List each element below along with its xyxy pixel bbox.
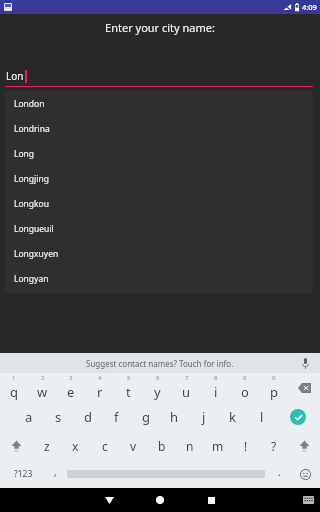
button[interactable]: Longjing [5, 166, 313, 191]
button[interactable]: Voice input [298, 356, 312, 370]
button[interactable]: Enter [276, 402, 320, 431]
button[interactable]: Suggest contact names? Touch for info. [0, 353, 320, 373]
staticText: ! [244, 438, 248, 454]
staticText: s [55, 408, 62, 426]
button[interactable]: g [131, 402, 160, 431]
button[interactable]: , [46, 460, 64, 488]
button[interactable]: z [32, 431, 61, 460]
staticText: v [130, 438, 137, 454]
button[interactable]: Longyan [5, 266, 313, 291]
staticText: d [84, 408, 92, 426]
button[interactable]: London [5, 91, 313, 116]
staticText: Londrina [14, 123, 50, 135]
button[interactable]: Recents [202, 488, 220, 512]
staticText: ?123 [14, 468, 33, 480]
staticText: Suggest contact names? Touch for info. [86, 358, 234, 369]
staticText: Long [14, 148, 35, 160]
staticText: h [170, 408, 179, 426]
staticText: t [126, 383, 131, 401]
button[interactable]: h [160, 402, 189, 431]
staticText: u [182, 383, 191, 401]
staticText: j [202, 408, 206, 426]
staticText: 4:09 [302, 2, 317, 12]
staticText: f [114, 408, 119, 426]
button[interactable]: l [247, 402, 276, 431]
staticText: Longxuyen [14, 248, 59, 260]
staticText: c [102, 438, 108, 454]
staticText: w [37, 383, 48, 401]
button[interactable]: a [14, 402, 44, 431]
button[interactable]: Home [151, 488, 169, 512]
staticText: Longueuil [14, 223, 54, 235]
button[interactable]: c [90, 431, 119, 460]
staticText: i [214, 383, 218, 401]
button[interactable]: b [148, 431, 176, 460]
button[interactable]: s [44, 402, 73, 431]
button[interactable]: Shift [0, 431, 32, 460]
staticText: e [67, 383, 75, 401]
button[interactable]: Londrina [5, 116, 313, 141]
button[interactable]: Shift [288, 431, 320, 460]
staticText: l [260, 408, 264, 426]
staticText: 2 [41, 374, 45, 382]
button[interactable]: Longxuyen [5, 241, 313, 266]
button[interactable]: 2 [28, 373, 56, 402]
staticText: g [142, 408, 150, 426]
button[interactable]: ?123 [0, 460, 46, 488]
staticText: 6 [156, 374, 160, 382]
button[interactable]: 7 [172, 373, 201, 402]
button[interactable]: j [189, 402, 218, 431]
button[interactable]: Back [100, 488, 118, 512]
button[interactable]: Longkou [5, 191, 313, 216]
button[interactable]: f [102, 402, 131, 431]
staticText: 9 [243, 374, 247, 382]
staticText: m [212, 438, 224, 454]
button[interactable]: m [204, 431, 232, 460]
button[interactable]: d [73, 402, 102, 431]
button[interactable]: 3 [56, 373, 85, 402]
staticText: z [44, 438, 50, 454]
staticText: Longkou [14, 198, 50, 210]
staticText: r [97, 383, 103, 401]
button[interactable]: 5 [114, 373, 143, 402]
staticText: p [270, 383, 278, 401]
button[interactable]: 1 [0, 373, 28, 402]
button[interactable]: 6 [143, 373, 172, 402]
staticText: 7 [185, 374, 189, 382]
staticText: ? [271, 438, 277, 454]
button[interactable]: Emoji [290, 460, 320, 488]
button[interactable]: ! [232, 431, 260, 460]
button[interactable]: n [176, 431, 204, 460]
staticText: y [154, 383, 161, 401]
staticText: 3 [69, 374, 73, 382]
button[interactable]: k [218, 402, 247, 431]
staticText: n [186, 438, 194, 454]
staticText: 1 [12, 374, 16, 382]
button[interactable]: 9 [230, 373, 259, 402]
staticText: q [10, 383, 18, 401]
button[interactable]: 4 [85, 373, 114, 402]
staticText: 8 [214, 374, 218, 382]
button[interactable]: v [119, 431, 148, 460]
staticText: . [278, 465, 281, 479]
button[interactable]: Longueuil [5, 216, 313, 241]
button[interactable]: Hide keyboard [300, 493, 316, 507]
button[interactable]: ? [260, 431, 288, 460]
button[interactable]: Backspace [288, 373, 320, 402]
staticText: x [72, 438, 79, 454]
staticText: , [54, 465, 57, 479]
button[interactable]: Space [64, 460, 268, 488]
staticText: b [158, 438, 166, 454]
button[interactable]: 0 [259, 373, 288, 402]
staticText: Lon [6, 69, 24, 83]
staticText: Longyan [14, 273, 49, 285]
button[interactable]: Long [5, 141, 313, 166]
staticText: 4 [98, 374, 102, 382]
button[interactable]: x [61, 431, 90, 460]
staticText: k [229, 408, 236, 426]
staticText: 0 [272, 374, 276, 382]
staticText: 5 [127, 374, 131, 382]
staticText: a [25, 408, 33, 426]
button[interactable]: 8 [201, 373, 230, 402]
button[interactable]: . [268, 460, 290, 488]
